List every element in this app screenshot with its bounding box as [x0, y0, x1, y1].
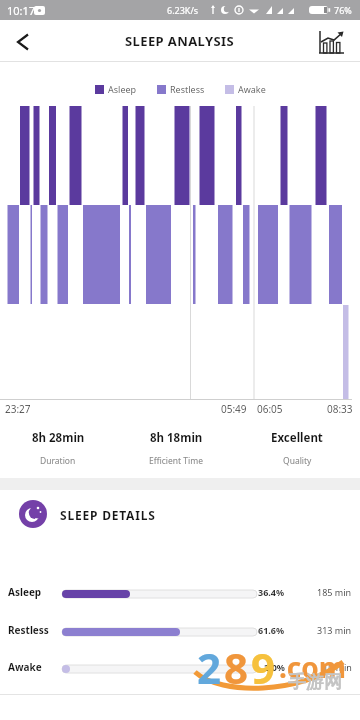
staticText: 6.23K/s [167, 4, 199, 16]
staticText: 9 [251, 639, 276, 696]
button[interactable]: Restless [0, 619, 360, 643]
staticText: 185 min [317, 586, 352, 598]
staticText: 手游网 [288, 671, 342, 694]
staticText: 313 min [317, 624, 352, 636]
staticText: 06:05 [257, 402, 283, 416]
staticText: Asleep [8, 585, 42, 599]
staticText: 23:27 [5, 402, 31, 416]
staticText: Awake [8, 660, 42, 674]
staticText: Excellent [271, 430, 323, 446]
staticText: 10 min [323, 661, 352, 673]
staticText: 2.0% [264, 661, 285, 673]
staticText: 8h 18min [150, 430, 203, 446]
staticText: .com [279, 648, 347, 686]
staticText: SLEEP DETAILS [60, 507, 156, 523]
button[interactable]: Asleep [0, 581, 360, 605]
staticText: 8 [224, 639, 249, 696]
staticText: 61.6% [258, 624, 285, 636]
button[interactable]: Awake [0, 656, 360, 680]
staticText: Duration [40, 455, 76, 467]
button[interactable] [6, 26, 40, 58]
button[interactable] [310, 25, 354, 59]
staticText: 08:33 [327, 402, 353, 416]
staticText: SLEEP ANALYSIS [125, 32, 235, 50]
staticText: 36.4% [258, 586, 285, 598]
staticText: Asleep [108, 83, 137, 95]
staticText: 10:17 [7, 3, 36, 18]
staticText: Restless [8, 623, 49, 637]
staticText: Efficient Time [149, 455, 204, 467]
staticText: Quality [283, 455, 312, 467]
staticText: 05:49 [221, 402, 247, 416]
staticText: 8h 28min [32, 430, 85, 446]
staticText: 2 [197, 639, 222, 696]
staticText: Awake [238, 83, 266, 95]
staticText: 76% [334, 4, 352, 16]
staticText: Restless [170, 83, 205, 95]
